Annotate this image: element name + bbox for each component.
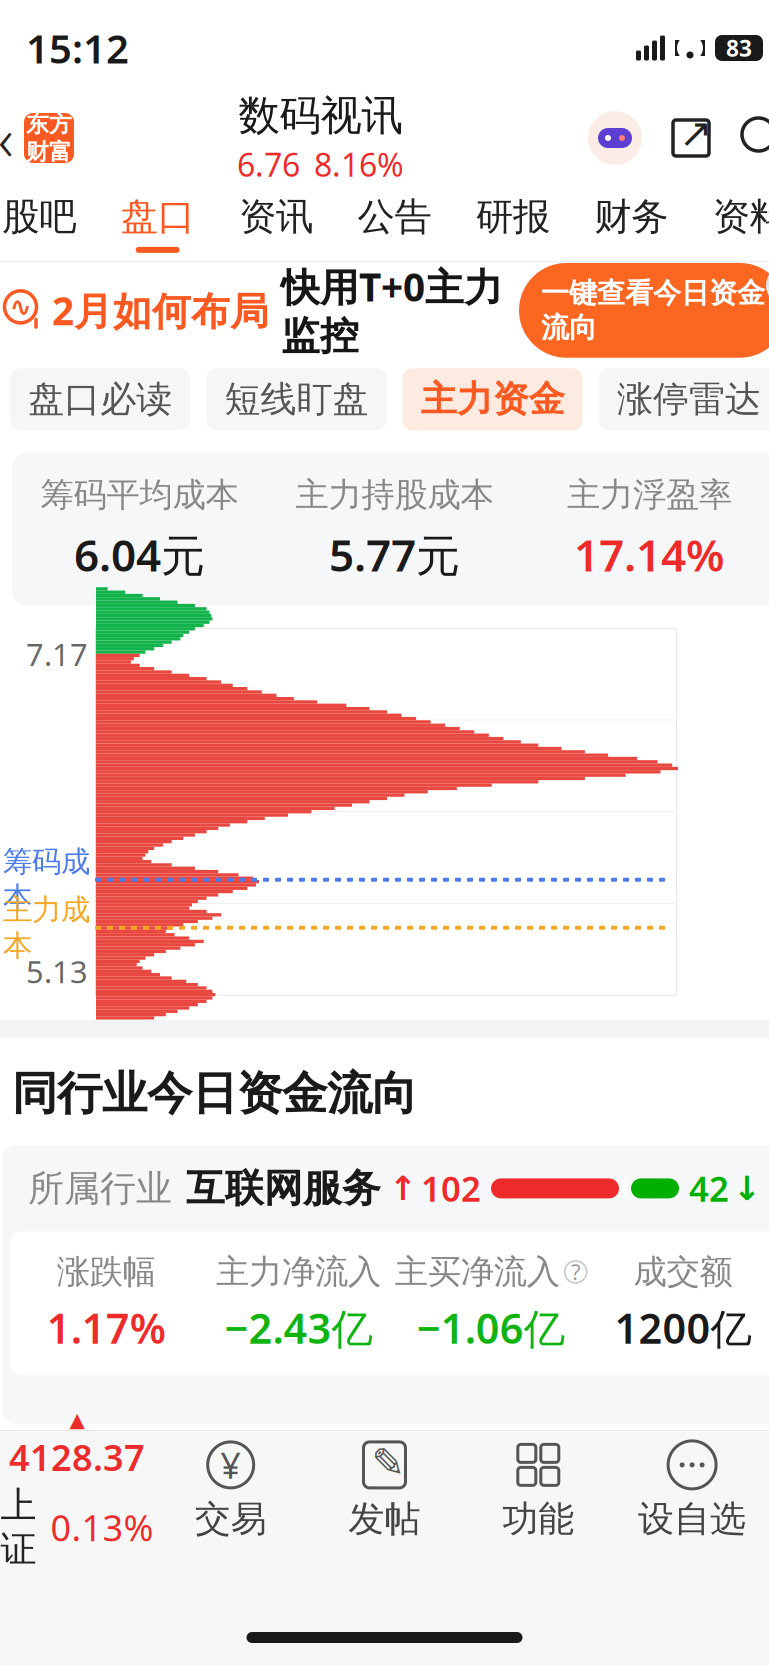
staticText: ◢	[360, 1472, 374, 1493]
button[interactable]: AI 助手	[587, 110, 643, 166]
staticText: 一键查看今日资金流向	[541, 276, 765, 345]
staticText: 主力持股成本	[295, 474, 493, 515]
staticText: ▲	[69, 1408, 84, 1431]
staticText: 资讯	[239, 194, 313, 240]
staticText: 涨停雷达	[617, 377, 761, 421]
button[interactable]: 短线盯盘	[206, 368, 386, 430]
button[interactable]: 股吧	[0, 180, 98, 261]
button[interactable]: 返回 东方财富	[0, 93, 74, 183]
button[interactable]: 涨幅	[285, 1460, 374, 1504]
button[interactable]: 分享	[669, 116, 713, 160]
staticText: 主力资金	[421, 377, 565, 421]
staticText: 主力净流入	[408, 1460, 588, 1504]
staticText: ¥	[220, 1441, 241, 1489]
staticText: ↑	[389, 1169, 417, 1207]
staticText: 5.77元	[329, 525, 460, 584]
staticText: 东方	[26, 110, 72, 138]
staticText: 财务	[594, 194, 668, 240]
staticText: ‹	[0, 99, 14, 177]
button[interactable]: 资讯	[217, 180, 335, 261]
staticText: 资料	[713, 194, 769, 240]
staticText: 6.76	[237, 143, 300, 186]
button[interactable]: 研报	[454, 180, 572, 261]
staticText: 5.94%	[305, 1517, 431, 1575]
staticText: ∿	[9, 292, 31, 322]
staticText: 0.13%	[50, 1503, 153, 1551]
staticText: 功能	[502, 1497, 574, 1541]
staticText: 公告	[357, 194, 431, 240]
staticText: 上证	[0, 1483, 36, 1571]
staticText: 1.17%	[47, 1300, 166, 1355]
staticText: ✎	[371, 1440, 405, 1486]
button[interactable]: ¥	[154, 1431, 308, 1549]
staticText: 盘口	[121, 194, 195, 240]
staticText: 财富	[26, 138, 72, 166]
staticText: 涨跌幅	[57, 1251, 156, 1292]
staticText: 成交额	[652, 1460, 760, 1504]
button[interactable]: 盘口	[98, 180, 217, 261]
staticText: 17.14%	[574, 525, 725, 584]
staticText: 4128.37	[9, 1433, 145, 1481]
staticText: 64.2亿	[646, 1517, 769, 1575]
button[interactable]: 关闭	[765, 264, 769, 306]
staticText: 所属行业	[28, 1166, 172, 1210]
staticText: 42	[689, 1165, 729, 1211]
staticText: 主力净流入	[216, 1251, 381, 1292]
staticText: 102	[421, 1165, 481, 1211]
staticText: 数据港	[12, 1521, 135, 1572]
staticText: ↓	[733, 1169, 761, 1207]
button[interactable]: ▲	[0, 1398, 154, 1581]
button[interactable]: ✎	[308, 1431, 461, 1549]
staticText: 6.04元	[74, 525, 205, 584]
staticText: 交易	[195, 1497, 267, 1541]
staticText: 互联网服务	[186, 1165, 381, 1212]
staticText: ?	[571, 1258, 580, 1286]
staticText: 证券名称	[12, 1460, 156, 1504]
button[interactable]: 财务	[572, 180, 690, 261]
button[interactable]: 公告	[335, 180, 454, 261]
staticText: 4.56亿	[473, 1517, 604, 1575]
staticText: 筹码成本	[3, 844, 90, 916]
staticText: 15:12	[26, 21, 129, 74]
staticText: ↗	[679, 110, 713, 156]
staticText: −2.43亿	[224, 1300, 372, 1355]
button[interactable]: 成交额	[652, 1460, 769, 1504]
staticText: 1200亿	[614, 1300, 751, 1355]
button[interactable]: 设自选	[615, 1431, 769, 1549]
staticText: 快用T+0主力监控	[281, 261, 503, 360]
staticText: 数码视讯	[238, 90, 402, 141]
button[interactable]: 涨停雷达	[599, 368, 769, 430]
staticText: 主力成本	[3, 892, 90, 964]
button[interactable]: 主力资金	[402, 368, 583, 430]
staticText: 成交额	[633, 1251, 732, 1292]
staticText: 盘口必读	[28, 377, 172, 421]
staticText: 8.16%	[314, 143, 404, 186]
staticText: −1.06亿	[417, 1300, 565, 1355]
staticText: 83	[726, 33, 752, 63]
staticText: 2月如何布局	[52, 285, 269, 336]
button[interactable]: 资料	[691, 180, 769, 261]
button[interactable]: 一键查看今日资金流向	[519, 263, 769, 358]
staticText: 筹码平均成本	[40, 474, 238, 515]
staticText: 股吧	[2, 194, 76, 240]
button[interactable]: 搜索	[739, 115, 769, 161]
staticText: 7.17	[26, 634, 88, 674]
staticText: 短线盯盘	[224, 377, 368, 421]
staticText: 主买净流入	[395, 1251, 560, 1292]
staticText: 发帖	[348, 1497, 420, 1541]
staticText: 5.13	[26, 951, 88, 992]
button[interactable]: 主力净流入	[408, 1460, 618, 1504]
staticText: 同行业今日资金流向	[12, 1066, 417, 1121]
staticText: 研报	[476, 194, 550, 240]
staticText: 主力浮盈率	[567, 474, 732, 515]
staticText: 设自选	[638, 1497, 746, 1541]
button[interactable]: 功能	[461, 1431, 615, 1549]
button[interactable]: 盘口必读	[10, 368, 190, 430]
